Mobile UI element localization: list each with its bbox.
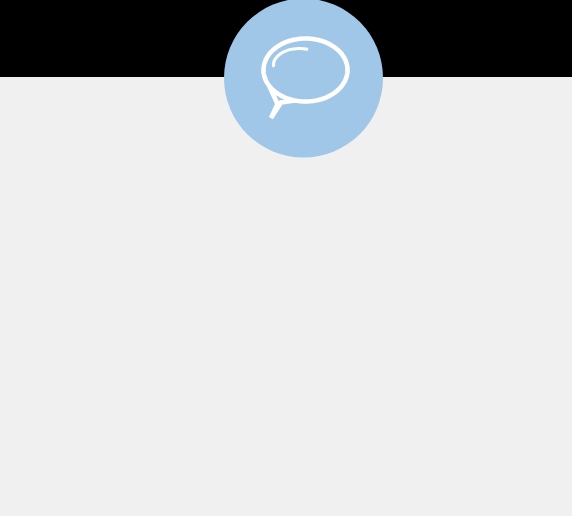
- button[interactable]: Messages: [0, 0, 572, 516]
